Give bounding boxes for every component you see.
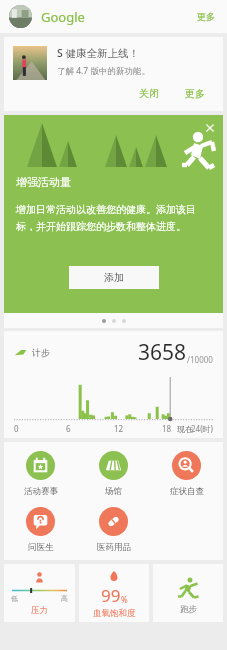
staticText: 低 — [11, 594, 18, 603]
staticText: 症状自查 — [170, 486, 204, 497]
button[interactable]: Profile — [9, 5, 32, 28]
staticText: 6 — [66, 423, 71, 434]
staticText: 高 — [61, 594, 68, 603]
staticText: 了解 4.7 版中的新功能。 — [57, 65, 150, 77]
staticText: % — [121, 594, 128, 605]
staticText: 添加 — [104, 271, 124, 284]
staticText: 血氧饱和度 — [93, 608, 136, 619]
staticText: 更多 — [197, 11, 215, 22]
staticText: 跑步 — [180, 604, 197, 615]
staticText: 关闭 — [139, 87, 159, 100]
staticText: 现在 — [177, 424, 193, 434]
button[interactable]: 问医生 — [4, 507, 77, 553]
staticText: 18 — [162, 423, 172, 434]
button[interactable]: Close — [201, 119, 219, 137]
button[interactable]: 活动赛事 — [4, 451, 77, 497]
staticText: S 健康全新上线！ — [57, 46, 140, 60]
button[interactable]: 跑步 — [153, 564, 223, 622]
button[interactable]: 99 — [79, 564, 149, 622]
staticText: 增加日常活动以改善您的健康。添加该目标，并开始跟踪您的步数和整体进度。 — [16, 203, 211, 233]
button[interactable]: 添加 — [69, 266, 159, 289]
staticText: 99 — [101, 584, 121, 607]
button[interactable]: 症状自查 — [150, 451, 223, 497]
button[interactable]: 关闭 — [133, 84, 165, 103]
staticText: 活动赛事 — [24, 486, 58, 497]
staticText: 医药用品 — [97, 542, 131, 553]
button[interactable]: 低 — [4, 564, 75, 622]
button[interactable]: 医药用品 — [77, 507, 150, 553]
staticText: 0 — [14, 423, 19, 434]
staticText: 计步 — [32, 347, 50, 358]
staticText: 问医生 — [28, 542, 54, 553]
staticText: Google — [41, 8, 85, 26]
staticText: /10000 — [187, 354, 213, 365]
staticText: 增强活动量 — [16, 175, 71, 189]
button[interactable]: 计步 — [4, 331, 223, 438]
staticText: 场馆 — [105, 486, 122, 497]
staticText: 24(时) — [191, 423, 213, 434]
staticText: 压力 — [31, 605, 48, 616]
staticText: 3658 — [138, 338, 187, 367]
button[interactable]: 更多 — [194, 7, 218, 26]
button[interactable]: 更多 — [179, 84, 211, 103]
staticText: 12 — [114, 423, 124, 434]
button[interactable]: 场馆 — [77, 451, 150, 497]
staticText: 更多 — [185, 87, 205, 100]
button[interactable]: S 健康全新上线！ — [4, 37, 223, 111]
